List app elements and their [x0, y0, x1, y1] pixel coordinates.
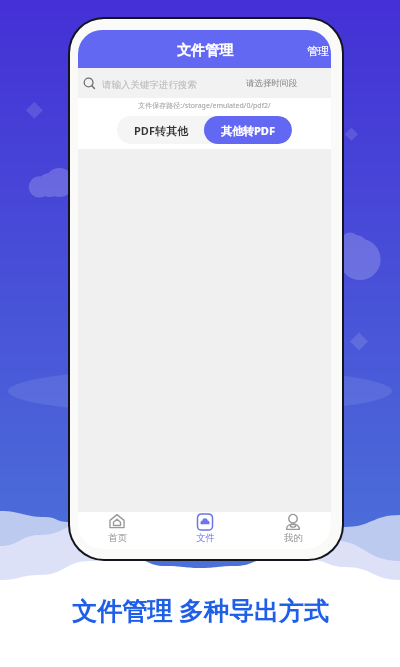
staticText: 其他转PDF: [221, 123, 275, 138]
staticText: 管理: [307, 44, 329, 58]
staticText: 请输入关键字进行搜索: [102, 79, 197, 91]
staticText: PDF转其他: [134, 123, 188, 138]
staticText: 我的: [284, 532, 303, 544]
button[interactable]: 首页: [97, 512, 137, 549]
staticText: 文件: [196, 532, 215, 544]
button[interactable]: 请选择时间段: [246, 78, 297, 89]
staticText: 文件保存路径:/storage/emulated/0/pdf2/: [78, 101, 331, 111]
staticText: 文件管理 多种导出方式: [72, 593, 329, 627]
button[interactable]: 管理: [301, 40, 331, 62]
button[interactable]: 请输入关键字进行搜索: [84, 68, 297, 98]
button[interactable]: 我的: [273, 512, 313, 549]
staticText: 首页: [108, 532, 127, 544]
staticText: 文件管理: [177, 42, 233, 60]
button[interactable]: 文件: [185, 512, 225, 549]
button[interactable]: 其他转PDF: [204, 116, 292, 144]
button[interactable]: PDF转其他: [117, 116, 204, 144]
